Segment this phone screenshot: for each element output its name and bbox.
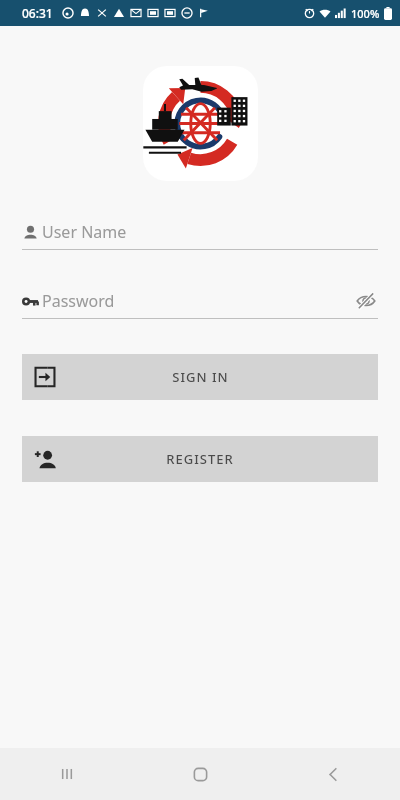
- button[interactable]: Show password: [354, 289, 378, 313]
- staticText: SIGN IN: [172, 368, 229, 386]
- staticText: REGISTER: [166, 450, 234, 468]
- staticText: 06:31: [22, 5, 53, 21]
- staticText: Password: [42, 290, 354, 312]
- staticText: 100%: [351, 6, 380, 21]
- button[interactable]: Password: [22, 288, 378, 319]
- button[interactable]: Recents: [0, 748, 134, 800]
- button[interactable]: REGISTER: [22, 436, 378, 482]
- button[interactable]: User Name: [22, 219, 378, 250]
- button[interactable]: SIGN IN: [22, 354, 378, 400]
- button[interactable]: Home: [134, 748, 267, 800]
- button[interactable]: Back: [267, 748, 400, 800]
- staticText: User Name: [42, 221, 378, 243]
